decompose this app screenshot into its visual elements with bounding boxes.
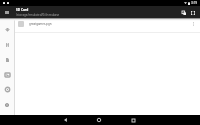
staticText: 3:19 — [191, 1, 198, 5]
staticText: /storage/emulated/0/chessbase — [16, 13, 60, 17]
button[interactable]: Recent apps — [124, 115, 142, 125]
button[interactable]: Copy — [179, 8, 188, 17]
button[interactable]: greatgames.pgn — [15, 18, 200, 32]
button[interactable]: Select all — [188, 8, 197, 17]
button[interactable]: Settings — [0, 97, 14, 112]
button[interactable]: More options — [188, 20, 198, 30]
button[interactable]: Images — [0, 67, 14, 82]
button[interactable]: Internal storage — [0, 37, 14, 52]
staticText: SD Card — [16, 8, 29, 12]
button[interactable]: Downloads — [0, 22, 14, 37]
button[interactable]: Back — [56, 115, 74, 125]
staticText: greatgames.pgn — [29, 22, 52, 26]
button[interactable]: Open navigation menu — [0, 6, 14, 18]
button[interactable]: Home — [90, 115, 108, 125]
button[interactable]: Documents — [0, 52, 14, 67]
button[interactable]: Audio — [0, 82, 14, 97]
